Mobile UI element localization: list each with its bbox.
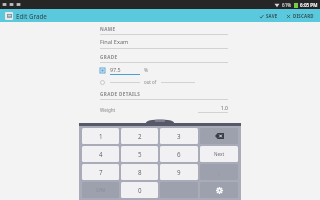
button[interactable]: Next: [200, 146, 238, 162]
button[interactable]: 7: [82, 164, 119, 180]
staticText: 6: [177, 150, 181, 158]
staticText: 4: [99, 150, 103, 158]
staticText: GRADE: [100, 54, 118, 60]
button[interactable]: 5: [121, 146, 158, 162]
button[interactable]: DISCARD: [283, 11, 317, 21]
staticText: 3: [177, 132, 181, 140]
button[interactable]: SAVE: [256, 11, 281, 21]
button[interactable]: 2: [121, 128, 158, 144]
staticText: 7: [99, 168, 103, 176]
staticText: SYM: [96, 187, 106, 193]
staticText: out of: [144, 79, 157, 85]
button[interactable]: Weight: [100, 104, 228, 113]
staticText: 0: [138, 186, 142, 194]
staticText: 6:05 PM: [300, 2, 318, 8]
button[interactable]: 3: [160, 128, 198, 144]
staticText: Final Exam: [100, 38, 129, 46]
button[interactable]: Edit Grade: [3, 10, 49, 22]
button[interactable]: Final Exam: [100, 38, 228, 49]
other: Percent grade selected: [100, 68, 105, 73]
button[interactable]: Percent grade selected: [100, 66, 228, 75]
staticText: 97.5: [110, 66, 121, 73]
button[interactable]: Keyboard settings: [200, 182, 238, 198]
button[interactable]: 0: [121, 182, 158, 198]
staticText: Weight: [100, 107, 116, 113]
other: Points grade option: [100, 80, 105, 85]
staticText: Edit Grade: [16, 12, 47, 20]
button[interactable]: 9: [160, 164, 198, 180]
staticText: SAVE: [266, 13, 278, 19]
staticText: GRADE DETAILS: [100, 91, 141, 97]
button[interactable]: 8: [121, 164, 158, 180]
staticText: 8: [138, 168, 142, 176]
staticText: 9: [177, 168, 181, 176]
staticText: NAME: [100, 26, 116, 32]
staticText: 5: [138, 150, 142, 158]
staticText: %: [144, 67, 148, 74]
staticText: 61%: [282, 2, 292, 8]
button[interactable]: 1: [82, 128, 119, 144]
button[interactable]: Points grade option: [100, 79, 228, 85]
staticText: 1: [99, 132, 103, 140]
staticText: 1.0: [198, 104, 228, 111]
button[interactable]: 6: [160, 146, 198, 162]
staticText: 2: [138, 132, 142, 140]
button[interactable]: Backspace: [200, 128, 238, 144]
staticText: DISCARD: [293, 13, 314, 19]
staticText: Next: [214, 151, 225, 157]
button[interactable]: 4: [82, 146, 119, 162]
